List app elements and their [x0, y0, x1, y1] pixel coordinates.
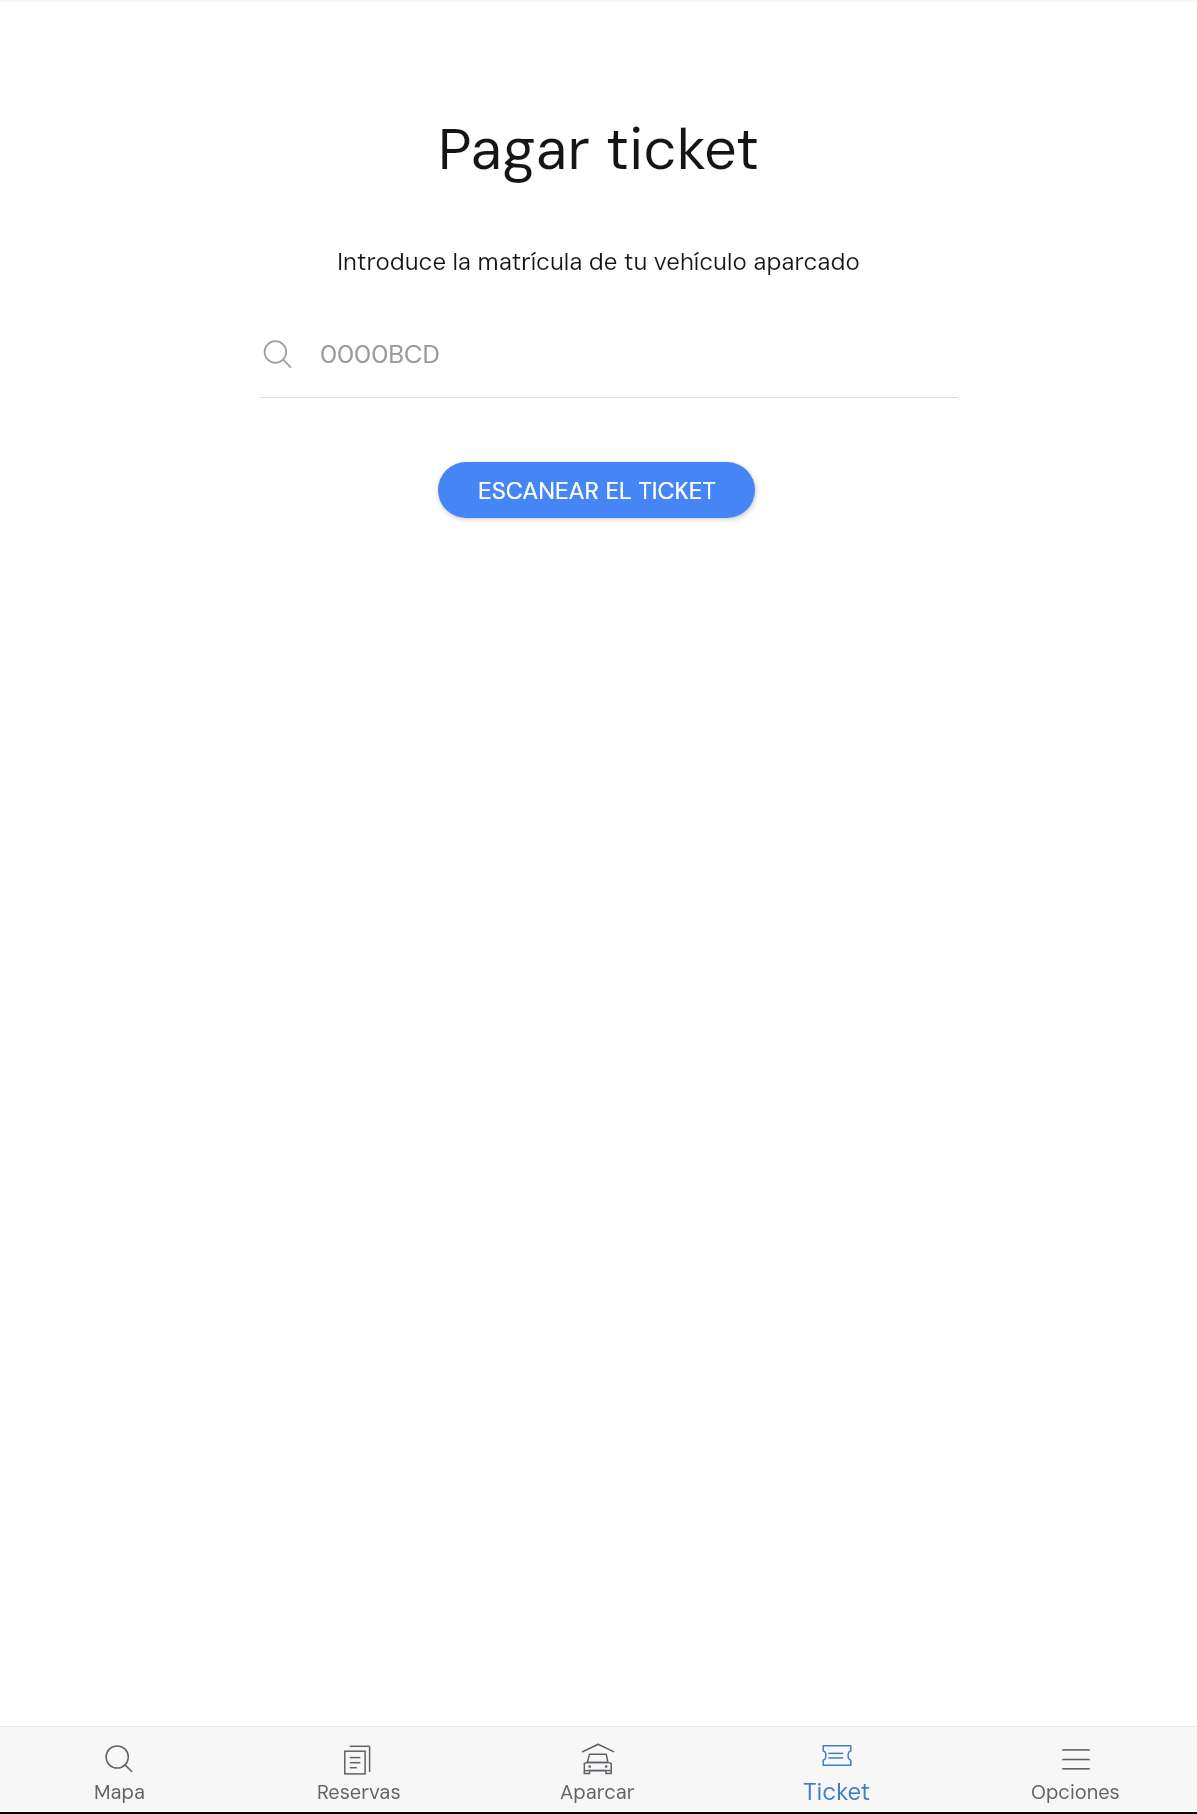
button[interactable]: Ticket: [717, 1727, 956, 1811]
button[interactable]: Reservas: [239, 1727, 478, 1811]
button[interactable]: Mapa: [0, 1727, 239, 1811]
staticText: Pagar ticket: [0, 111, 1197, 187]
staticText: Mapa: [94, 1779, 145, 1805]
button[interactable]: Opciones: [956, 1727, 1195, 1811]
button[interactable]: ESCANEAR EL TICKET: [438, 462, 755, 518]
staticText: Introduce la matrícula de tu vehículo ap…: [0, 246, 1197, 277]
staticText: Reservas: [317, 1779, 401, 1805]
staticText: ESCANEAR EL TICKET: [478, 475, 716, 506]
staticText: Opciones: [1031, 1779, 1120, 1805]
staticText: Aparcar: [560, 1779, 635, 1805]
staticText: 0000BCD: [320, 337, 440, 371]
button[interactable]: Aparcar: [478, 1727, 717, 1811]
staticText: Ticket: [803, 1776, 871, 1807]
